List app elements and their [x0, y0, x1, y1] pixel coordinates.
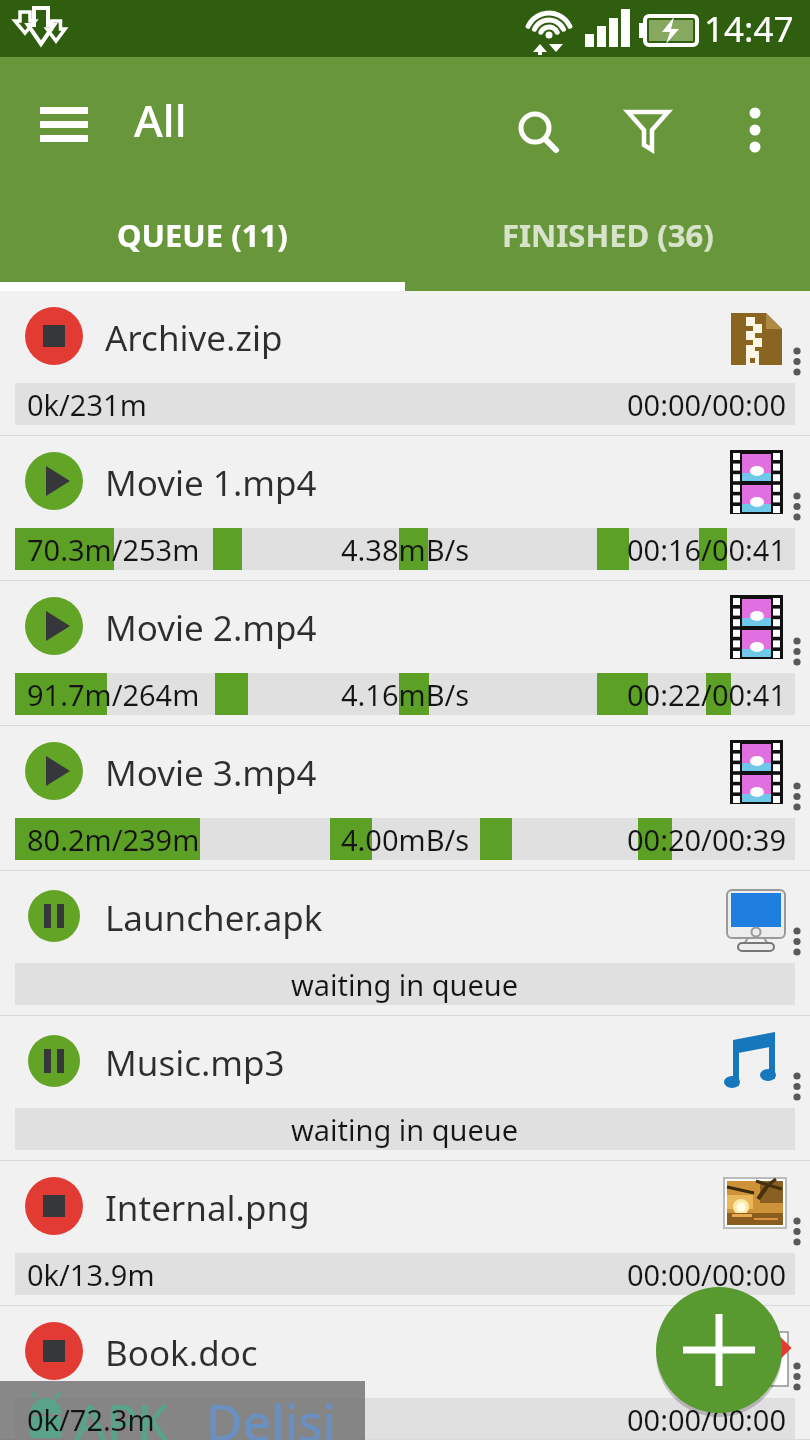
- staticText: Movie 3.mp4: [105, 749, 317, 797]
- staticText: 00:22/00:41: [627, 675, 787, 714]
- button[interactable]: FINISHED (36): [405, 175, 810, 291]
- button[interactable]: Book.doc: [0, 1306, 810, 1440]
- staticText: 0k/13.9m: [27, 1255, 155, 1294]
- staticText: 00:16/00:41: [627, 530, 787, 569]
- button[interactable]: [28, 101, 100, 151]
- staticText: waiting in queue: [291, 1110, 519, 1149]
- staticText: 4.16mB/s: [341, 675, 470, 714]
- button[interactable]: [25, 1177, 83, 1235]
- staticText: 0k/231m: [27, 385, 147, 424]
- button[interactable]: [25, 452, 83, 510]
- staticText: 80.2m/239m: [27, 820, 200, 859]
- button[interactable]: [656, 1287, 782, 1413]
- button[interactable]: Music.mp3: [0, 1016, 810, 1161]
- staticText: Internal.png: [105, 1184, 310, 1232]
- staticText: Archive.zip: [105, 314, 283, 362]
- button[interactable]: [28, 1035, 80, 1087]
- button[interactable]: [615, 102, 681, 158]
- button[interactable]: Movie 1.mp4: [0, 436, 810, 581]
- button[interactable]: [25, 742, 83, 800]
- staticText: Music.mp3: [105, 1039, 285, 1087]
- staticText: APK: [74, 1388, 169, 1440]
- staticText: waiting in queue: [291, 965, 519, 1004]
- staticText: Movie 2.mp4: [105, 604, 317, 652]
- staticText: 00:00/00:00: [627, 1255, 787, 1294]
- button[interactable]: [25, 307, 83, 365]
- staticText: 4.38mB/s: [341, 530, 470, 569]
- button[interactable]: [505, 102, 571, 158]
- button[interactable]: Archive.zip: [0, 291, 810, 436]
- staticText: 70.3m/253m: [27, 530, 200, 569]
- button[interactable]: Internal.png: [0, 1161, 810, 1306]
- staticText: All: [134, 90, 187, 150]
- staticText: QUEUE (11): [117, 214, 288, 256]
- staticText: 00:00/00:00: [627, 1400, 787, 1439]
- staticText: 00:00/00:00: [627, 385, 787, 424]
- staticText: Movie 1.mp4: [105, 459, 317, 507]
- button[interactable]: [25, 597, 83, 655]
- staticText: Launcher.apk: [105, 894, 323, 942]
- staticText: Book.doc: [105, 1329, 258, 1377]
- staticText: 00:20/00:39: [627, 820, 787, 859]
- button[interactable]: QUEUE (11): [0, 175, 405, 291]
- staticText: Delisi: [206, 1388, 337, 1440]
- button[interactable]: [28, 890, 80, 942]
- staticText: 91.7m/264m: [27, 675, 200, 714]
- staticText: 4.00mB/s: [341, 820, 470, 859]
- staticText: 0k/72.3m: [27, 1400, 155, 1439]
- button[interactable]: Movie 3.mp4: [0, 726, 810, 871]
- button[interactable]: Launcher.apk: [0, 871, 810, 1016]
- button[interactable]: [726, 102, 786, 158]
- button[interactable]: [25, 1322, 83, 1380]
- button[interactable]: Movie 2.mp4: [0, 581, 810, 726]
- staticText: 14:47: [704, 5, 794, 53]
- staticText: FINISHED (36): [502, 214, 714, 256]
